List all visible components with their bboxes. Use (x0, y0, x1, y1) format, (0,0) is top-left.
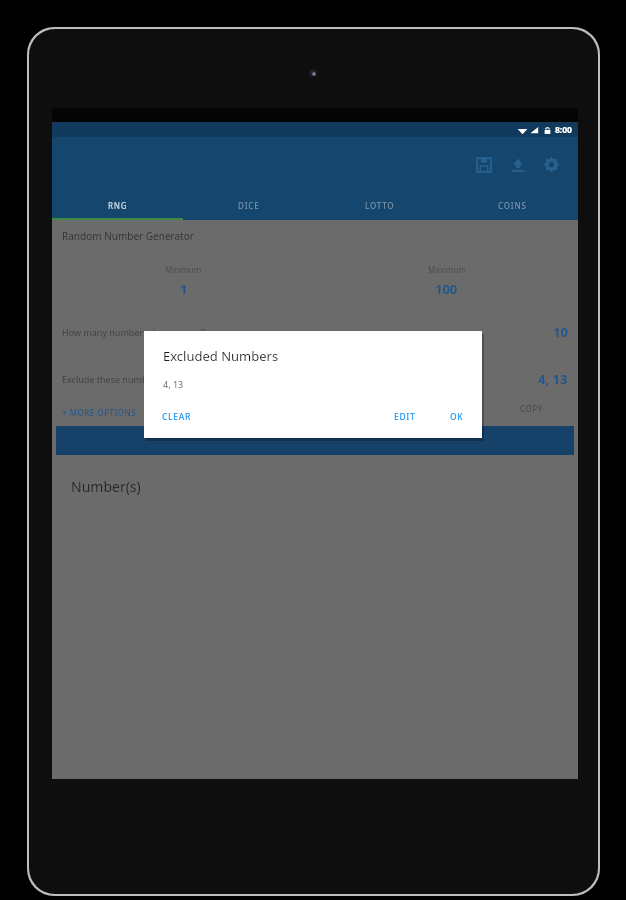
staticText: 100 (435, 280, 458, 298)
button[interactable]: Load (505, 152, 530, 177)
staticText: Number(s) (71, 477, 141, 496)
button[interactable]: Exclude these numbers (52, 370, 578, 388)
button[interactable]: COINS (446, 192, 578, 218)
button[interactable]: How many numbers do you need? (52, 323, 578, 341)
staticText: OK (450, 411, 464, 423)
button[interactable]: OK (448, 406, 466, 428)
staticText: 1 (180, 280, 188, 298)
staticText: 8:00 (555, 124, 572, 136)
staticText: COINS (498, 200, 527, 211)
staticText: Excluded Numbers (163, 347, 279, 365)
staticText: EDIT (394, 411, 416, 423)
button[interactable]: Minimum (52, 264, 315, 298)
button[interactable]: EDIT (392, 406, 418, 428)
button[interactable]: + MORE OPTIONS (62, 407, 137, 418)
button[interactable]: LOTTO (314, 192, 446, 218)
staticText: 10 (553, 323, 568, 341)
staticText: Maximum (428, 264, 466, 275)
staticText: RNG (108, 200, 128, 211)
staticText: 4, 13 (538, 370, 568, 388)
staticText: Minimum (165, 264, 202, 275)
staticText: 4, 13 (163, 378, 184, 390)
button[interactable]: COPY (520, 403, 543, 414)
staticText: Random Number Generator (62, 229, 194, 243)
staticText: COPY (520, 403, 543, 414)
staticText: + MORE OPTIONS (62, 407, 137, 418)
button[interactable]: CLEAR (160, 406, 194, 428)
button[interactable]: RNG (52, 192, 183, 218)
staticText: DICE (238, 200, 260, 211)
staticText: How many numbers do you need? (62, 326, 207, 338)
button[interactable]: DICE (183, 192, 314, 218)
staticText: LOTTO (365, 200, 395, 211)
button[interactable]: Settings (539, 152, 564, 177)
staticText: CLEAR (162, 411, 192, 423)
staticText: Exclude these numbers (62, 373, 161, 385)
button[interactable] (56, 426, 574, 455)
button[interactable]: Maximum (315, 264, 578, 298)
button[interactable]: Save (471, 152, 496, 177)
